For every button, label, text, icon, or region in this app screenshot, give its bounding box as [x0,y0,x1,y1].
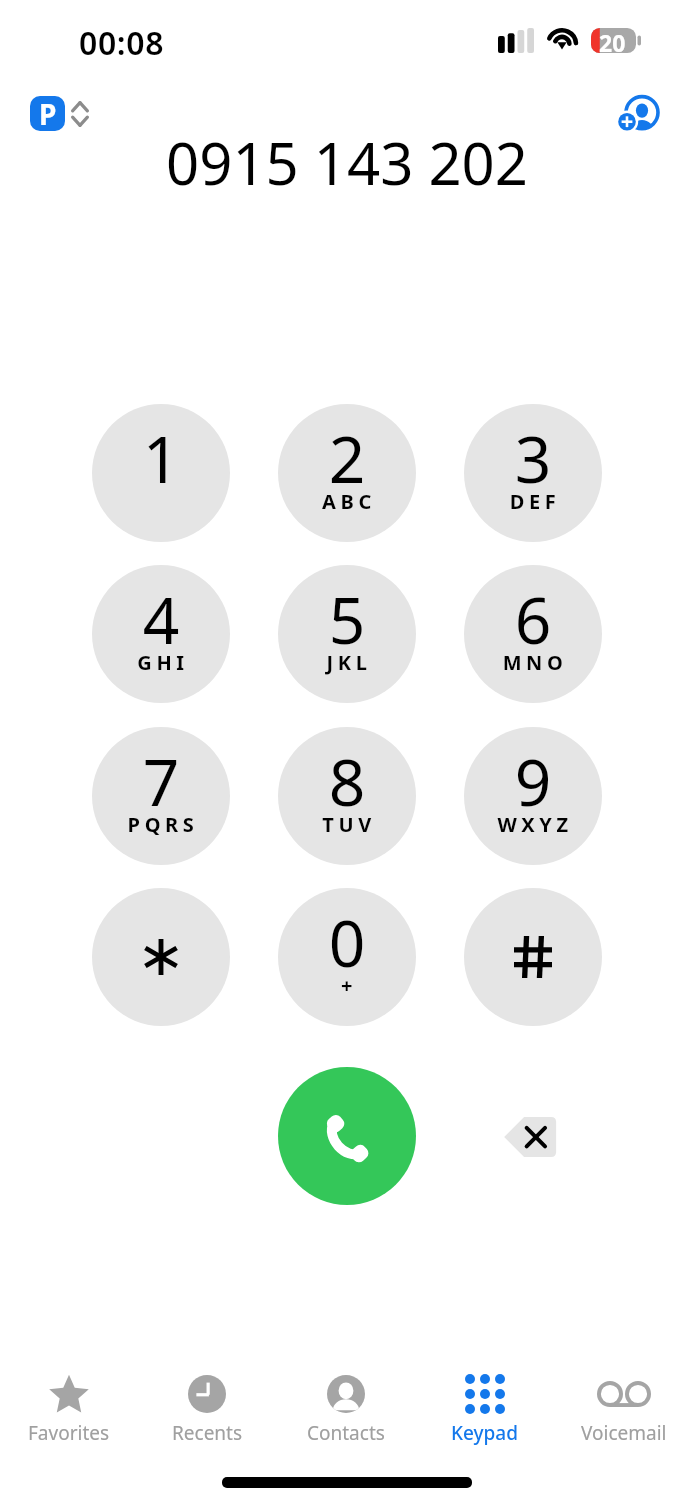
staticText: DEF [466,488,602,515]
button[interactable]: P [30,96,89,131]
button[interactable]: Delete [490,1108,570,1166]
staticText: 20 [599,27,626,58]
staticText: 9 [464,738,602,825]
staticText: PQRS [94,811,230,838]
staticText: TUV [280,811,416,838]
staticText: WXYZ [466,811,602,838]
button[interactable]: Favorites [0,1371,138,1446]
button[interactable]: Add contact [612,90,664,136]
staticText: + [280,972,416,999]
button[interactable]: Contacts [276,1371,415,1446]
staticText: 8 [278,738,416,825]
button[interactable]: Voicemail [554,1371,693,1446]
staticText: 7 [92,738,230,825]
button[interactable]: 8 [278,727,416,865]
staticText: Contacts [307,1420,385,1446]
button[interactable]: 1 [92,404,230,542]
staticText: Voicemail [581,1420,667,1446]
staticText: 5 [278,576,416,663]
button[interactable]: 4 [92,565,230,703]
staticText: 0 [278,899,416,986]
button[interactable] [464,888,602,1026]
staticText: Recents [172,1420,243,1446]
staticText: JKL [280,649,416,676]
button[interactable] [92,888,230,1026]
button[interactable]: 0 [278,888,416,1026]
button[interactable]: Keypad [415,1371,554,1446]
staticText: Favorites [28,1420,110,1446]
staticText: MNO [466,649,602,676]
button[interactable]: Call [278,1067,416,1205]
button[interactable]: 5 [278,565,416,703]
button[interactable]: 7 [92,727,230,865]
staticText: Keypad [451,1420,518,1446]
staticText: 2 [278,415,416,502]
button[interactable]: 9 [464,727,602,865]
staticText: 0915 143 202 [166,123,528,199]
staticText: ABC [280,488,416,515]
staticText: 4 [92,576,230,663]
staticText: GHI [94,649,230,676]
button[interactable]: 6 [464,565,602,703]
staticText: 00:08 [79,21,165,65]
button[interactable]: 2 [278,404,416,542]
button[interactable]: Recents [138,1371,276,1446]
staticText: 1 [92,415,230,502]
button[interactable]: 3 [464,404,602,542]
staticText: P [39,96,57,130]
staticText: 6 [464,576,602,663]
staticText: 3 [464,415,602,502]
